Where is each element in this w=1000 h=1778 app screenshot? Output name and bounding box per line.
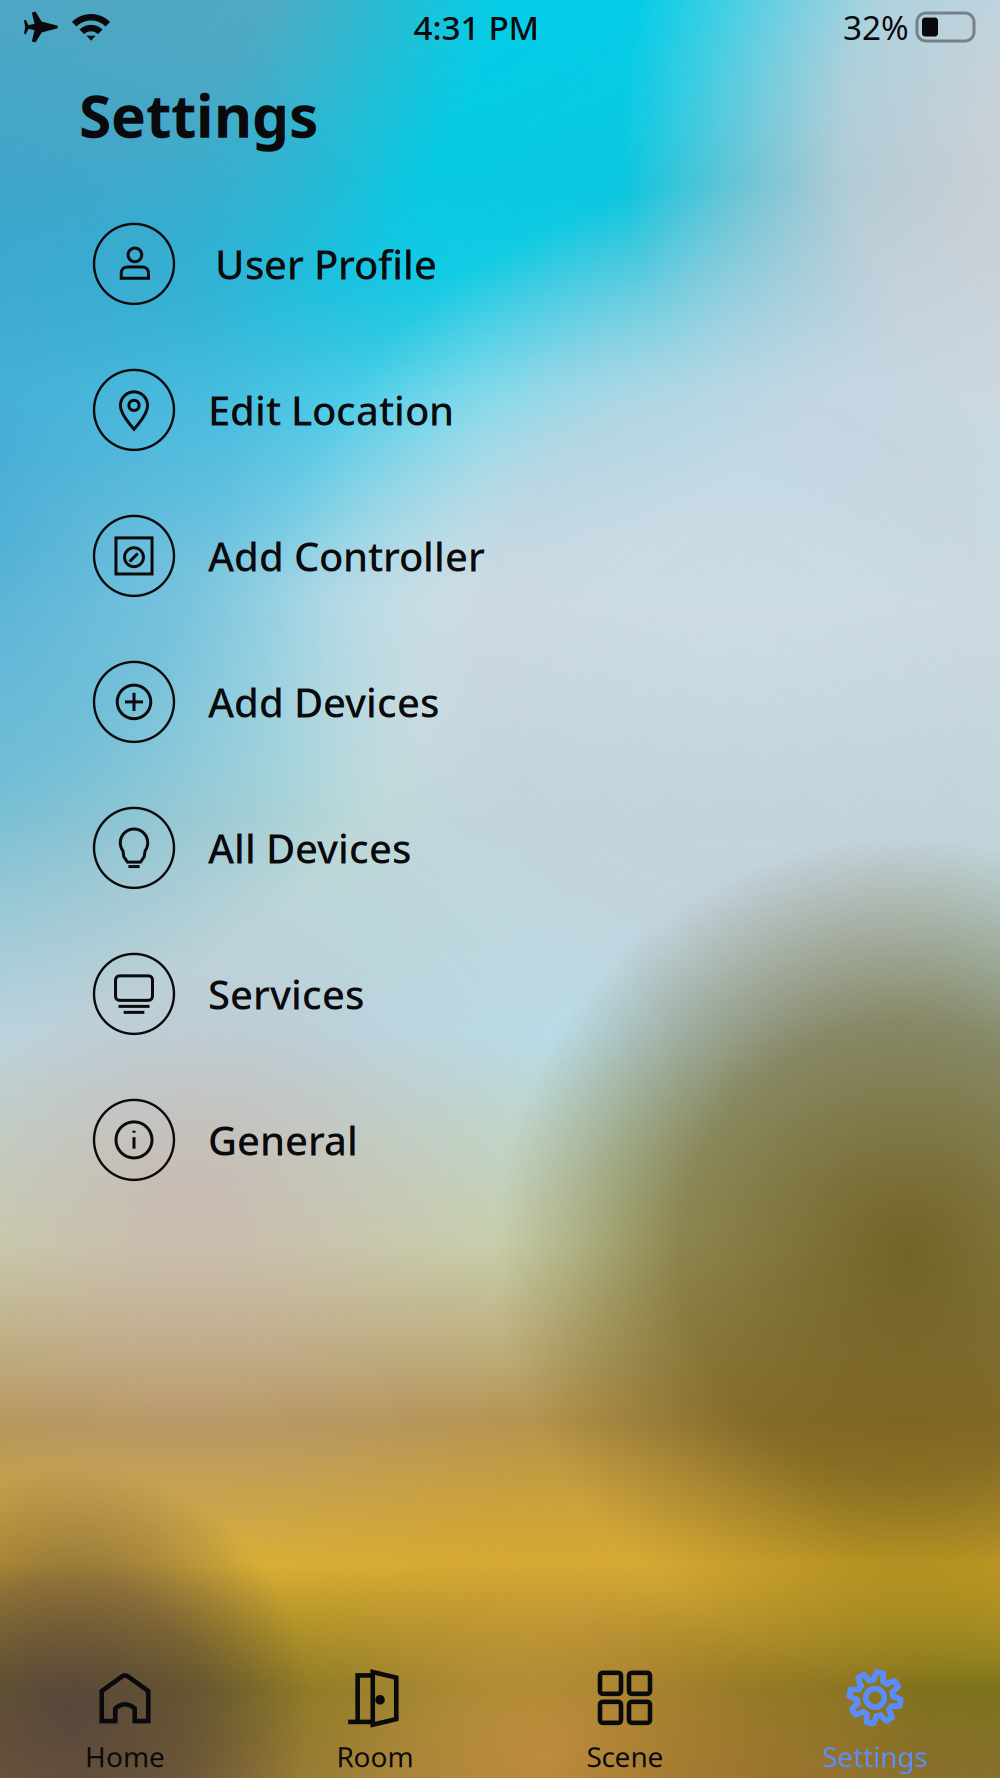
button[interactable]: Room [250,1670,500,1775]
button[interactable]: All Devices [0,789,1000,907]
button[interactable]: Scene [500,1670,750,1775]
button[interactable]: Services [0,935,1000,1053]
staticText: Add Devices [208,675,439,728]
staticText: 32% [843,5,909,49]
staticText: All Devices [208,821,411,874]
staticText: Edit Location [208,383,454,436]
staticText: Home [85,1738,165,1775]
staticText: Services [208,967,364,1020]
staticText: User Profile [215,237,437,290]
button[interactable]: Settings [750,1670,1000,1775]
button[interactable]: Add Devices [0,643,1000,761]
button[interactable]: User Profile [0,205,1000,323]
staticText: Settings [822,1738,927,1775]
staticText: 4:31 PM [413,5,539,49]
button[interactable]: General [0,1081,1000,1199]
staticText: Add Controller [208,529,485,582]
staticText: Settings [79,76,318,154]
button[interactable]: Add Controller [0,497,1000,615]
button[interactable]: Home [0,1670,250,1775]
staticText: General [208,1113,358,1166]
button[interactable]: Edit Location [0,351,1000,469]
staticText: Room [336,1738,413,1775]
staticText: Scene [586,1738,663,1775]
